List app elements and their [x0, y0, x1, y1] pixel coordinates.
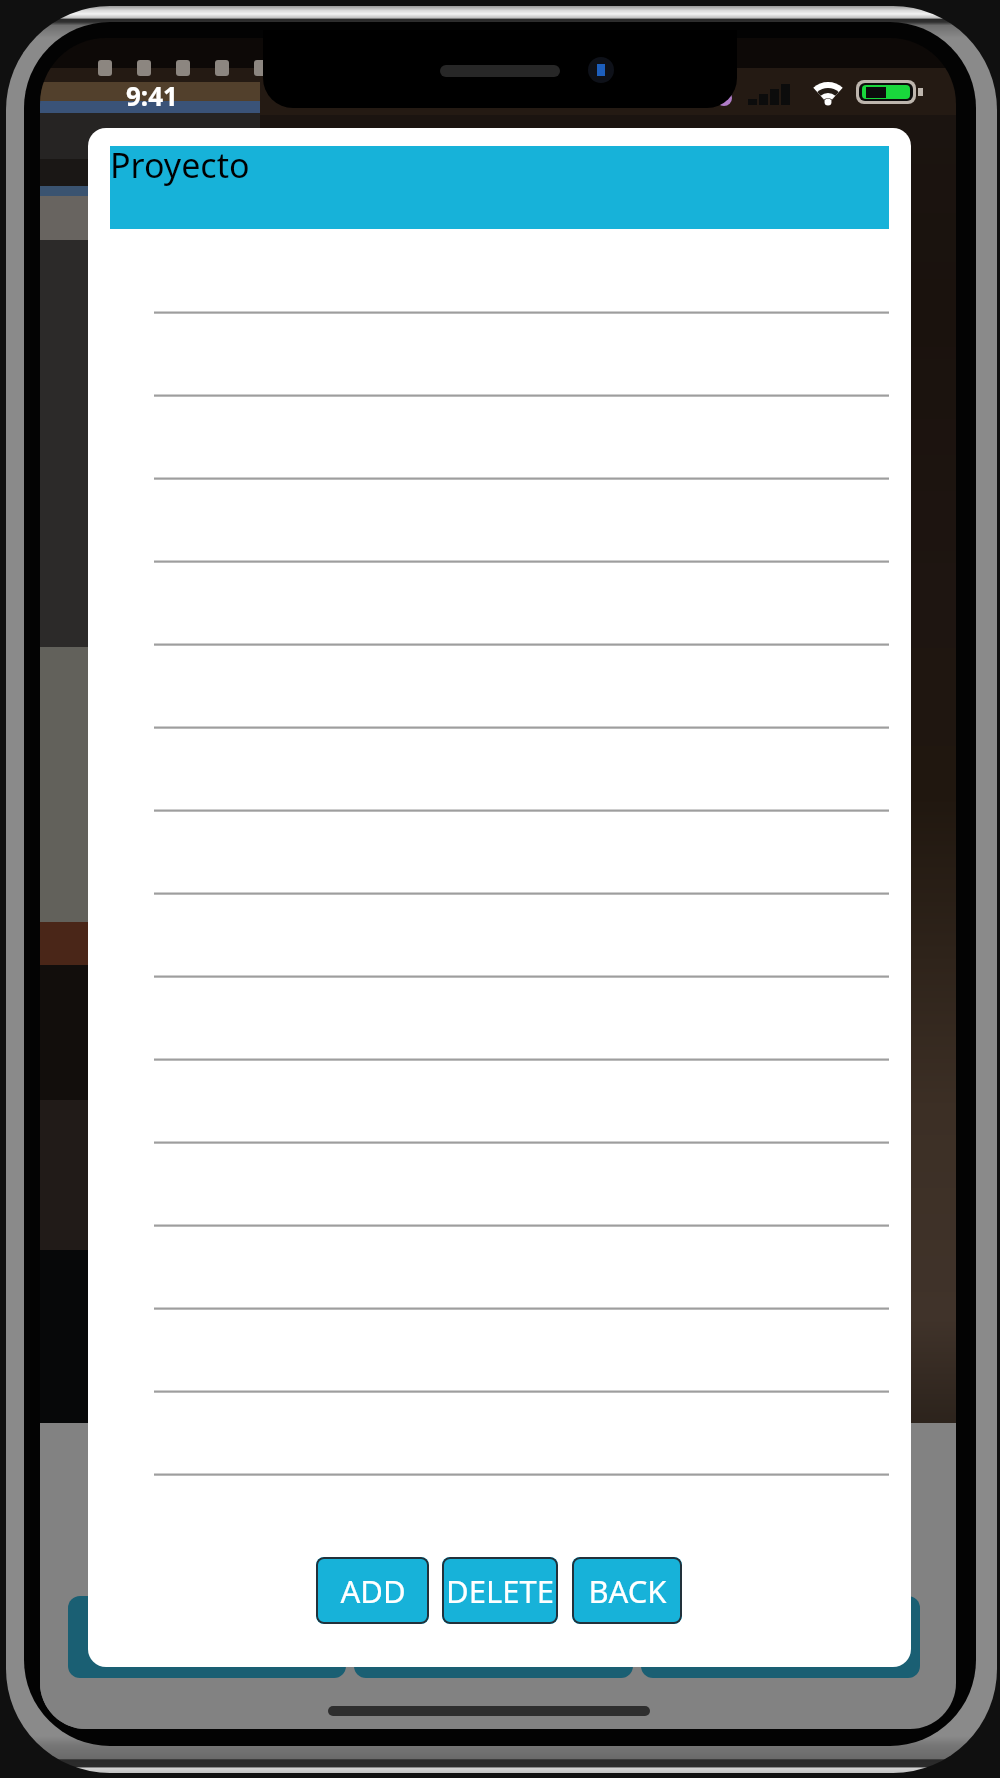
button[interactable] — [68, 1596, 346, 1678]
staticText: Proyecto — [110, 142, 250, 188]
button[interactable]: BACK — [572, 1557, 682, 1624]
button[interactable]: ADD — [316, 1557, 429, 1624]
staticText: DELETE — [446, 1570, 554, 1612]
button[interactable]: DELETE — [442, 1557, 558, 1624]
staticText: 9:41 — [126, 78, 178, 113]
button[interactable] — [354, 1596, 633, 1678]
staticText: ADD — [340, 1570, 406, 1612]
staticText: BACK — [588, 1570, 667, 1612]
button[interactable] — [641, 1596, 920, 1678]
